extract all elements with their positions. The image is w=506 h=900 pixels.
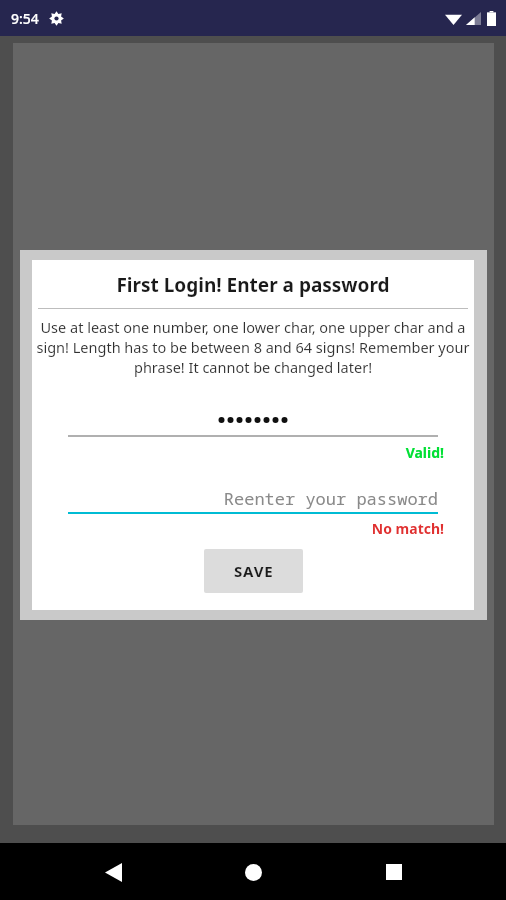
staticText: Reenter your password — [223, 487, 438, 510]
staticText: First Login! Enter a password — [32, 272, 474, 298]
staticText: Valid! — [32, 443, 444, 462]
staticText: 9:54 — [11, 9, 39, 28]
button[interactable] — [68, 403, 438, 437]
button[interactable]: Home — [225, 844, 281, 900]
button[interactable]: Recent apps — [366, 844, 422, 900]
button[interactable]: Back — [85, 844, 141, 900]
staticText: SAVE — [234, 561, 274, 581]
button[interactable]: SAVE — [204, 549, 303, 593]
staticText: No match! — [32, 519, 444, 538]
button[interactable]: Reenter your password — [68, 480, 438, 514]
staticText: Use at least one number, one lower char,… — [35, 317, 471, 377]
